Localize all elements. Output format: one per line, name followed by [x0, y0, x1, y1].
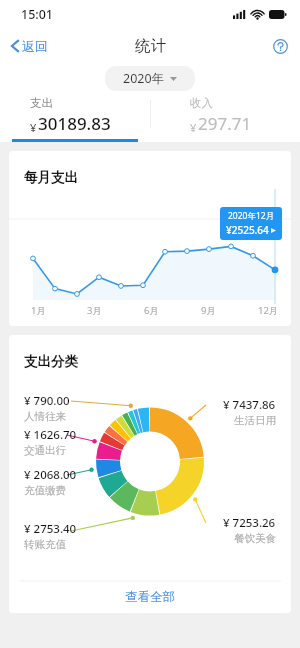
- staticText: 交通出行: [24, 444, 66, 457]
- staticText: 297.71: [198, 112, 252, 135]
- button[interactable]: 返回: [0, 31, 58, 61]
- staticText: 30189.83: [38, 112, 111, 135]
- staticText: 人情往来: [24, 410, 66, 423]
- staticText: 2020年: [123, 70, 165, 87]
- button[interactable]: 帮助: [261, 32, 300, 61]
- button[interactable]: 2020年: [105, 66, 195, 91]
- staticText: ¥ 2753.40: [24, 521, 77, 537]
- staticText: 转账充值: [24, 538, 66, 551]
- button[interactable]: 查看全部: [9, 581, 291, 613]
- staticText: 支出分类: [24, 353, 78, 370]
- staticText: ¥ 790.00: [24, 393, 70, 409]
- staticText: 餐饮美食: [234, 532, 276, 545]
- staticText: ¥2525.64: [226, 223, 269, 237]
- staticText: 收入: [190, 96, 213, 110]
- staticText: 查看全部: [125, 589, 175, 605]
- staticText: 15:01: [21, 6, 54, 23]
- staticText: 支出: [30, 96, 53, 110]
- staticText: 充值缴费: [24, 484, 66, 497]
- staticText: 9月: [201, 304, 216, 317]
- staticText: 生活日用: [234, 414, 276, 427]
- staticText: ¥ 1626.70: [24, 427, 77, 443]
- staticText: ¥: [30, 120, 37, 135]
- staticText: 6月: [144, 304, 159, 317]
- staticText: 统计: [135, 36, 166, 56]
- staticText: 12月: [258, 304, 279, 317]
- staticText: 3月: [87, 304, 102, 317]
- staticText: 1月: [31, 304, 46, 317]
- staticText: 每月支出: [24, 169, 78, 186]
- staticText: ¥ 7437.86: [223, 397, 276, 413]
- staticText: 2020年12月: [228, 210, 275, 222]
- staticText: ¥: [190, 120, 197, 135]
- button[interactable]: [0, 92, 300, 142]
- staticText: ¥ 2068.00: [24, 467, 77, 483]
- staticText: ¥ 7253.26: [223, 515, 276, 531]
- staticText: 返回: [22, 38, 48, 54]
